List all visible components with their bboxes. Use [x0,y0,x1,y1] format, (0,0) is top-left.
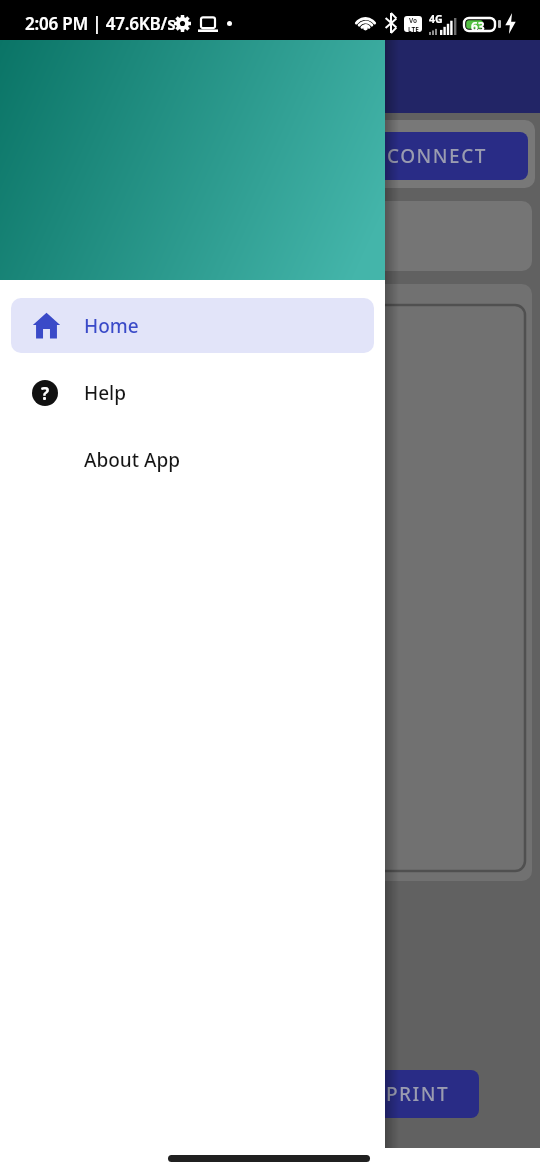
button[interactable]: ? [0,365,374,420]
staticText: About App [84,447,180,473]
staticText: Help [84,380,127,406]
button[interactable]: CONNECT [346,132,528,180]
staticText: LTE [408,25,419,32]
button[interactable]: About App [0,432,374,487]
staticText: 4G [429,12,443,26]
staticText: Home [84,313,139,339]
staticText: CONNECT [387,143,487,169]
staticText: 2:06 PM | 47.6KB/s [25,12,176,35]
staticText: PRINT [386,1081,450,1107]
button[interactable]: PRINT [357,1070,479,1118]
staticText: ? [41,382,50,405]
staticText: 63 [471,18,485,33]
staticText: Vo [409,16,418,25]
button[interactable]: Home [11,298,374,353]
